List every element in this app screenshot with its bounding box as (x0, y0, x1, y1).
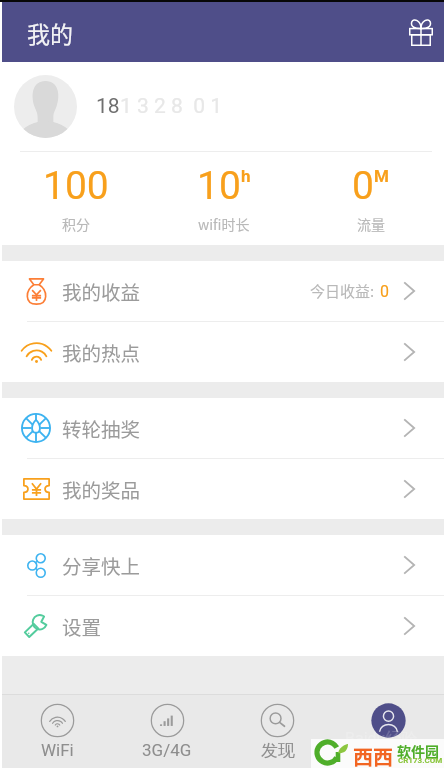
staticText: 流量 (357, 214, 385, 234)
staticText: 3G/4G (142, 740, 192, 760)
staticText: 0 (380, 282, 389, 301)
button[interactable]: 发现 (222, 695, 333, 768)
button[interactable]: 10 (150, 163, 297, 234)
button[interactable]: 0 (297, 163, 444, 234)
button[interactable]: 100 (2, 163, 150, 234)
staticText: M (374, 166, 389, 186)
button[interactable]: Gift (396, 8, 444, 56)
staticText: 我的 (27, 16, 73, 49)
staticText: WiFi (41, 740, 74, 760)
staticText: 西西 (353, 742, 393, 768)
staticText: 分享快上 (62, 551, 141, 579)
staticText: 软件园 (397, 741, 439, 761)
button[interactable]: 我的热点 (2, 322, 444, 382)
button[interactable]: 3G/4G (112, 695, 222, 768)
button[interactable]: WiFi (2, 695, 112, 768)
staticText: 我的收益 (62, 277, 141, 305)
staticText: 18 (96, 94, 120, 119)
button[interactable]: 我的收益 (2, 261, 444, 321)
staticText: 我的热点 (62, 338, 141, 366)
staticText: Baidu经验 (345, 729, 418, 749)
staticText: 设置 (62, 612, 102, 640)
button[interactable]: My profile (333, 695, 444, 768)
button[interactable]: 我的奖品 (2, 459, 444, 519)
staticText: 100 (43, 163, 109, 209)
staticText: 1 3 2 8 0 1 (120, 94, 223, 119)
staticText: wifi时长 (198, 214, 250, 234)
button[interactable]: 转轮抽奖 (2, 398, 444, 458)
staticText: 今日收益: (310, 280, 375, 302)
staticText: 发现 (261, 740, 295, 761)
staticText: 转轮抽奖 (62, 414, 141, 442)
staticText: 我的奖品 (62, 475, 141, 503)
staticText: CR173.COM (398, 756, 443, 765)
button[interactable]: 18 (2, 62, 444, 151)
staticText: h (241, 166, 251, 186)
button[interactable]: 分享快上 (2, 535, 444, 595)
button[interactable]: 设置 (2, 596, 444, 656)
staticText: 积分 (62, 214, 90, 234)
staticText: 10 (197, 163, 241, 209)
staticText: 0 (352, 163, 374, 209)
